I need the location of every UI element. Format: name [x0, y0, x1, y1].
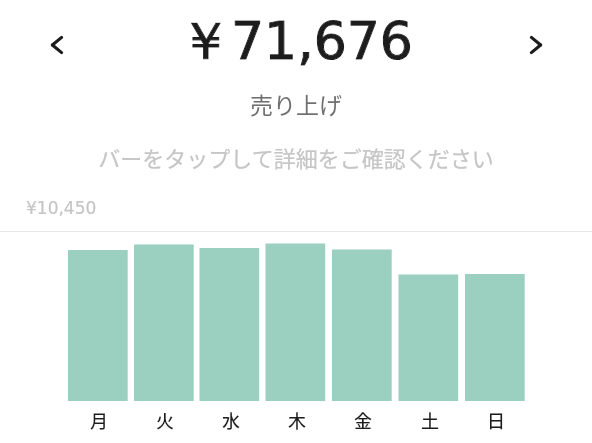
staticText: 月	[69, 407, 129, 433]
staticText: 土	[400, 407, 460, 433]
staticText: ¥10,450	[26, 198, 97, 218]
staticText: 火	[135, 407, 195, 433]
staticText: 売り上げ	[0, 87, 592, 120]
button[interactable]: 日曜日の売り上げ	[465, 274, 525, 401]
staticText: バーをタップして詳細をご確認ください	[0, 141, 592, 173]
button[interactable]: Next period	[514, 23, 558, 67]
button[interactable]: 金曜日の売り上げ	[332, 250, 392, 402]
button[interactable]: 木曜日の売り上げ	[266, 244, 326, 402]
button[interactable]: 水曜日の売り上げ	[200, 248, 260, 401]
staticText: 水	[201, 407, 261, 433]
button[interactable]: 月曜日の売り上げ	[68, 250, 128, 401]
button[interactable]: Previous period	[35, 23, 79, 67]
button[interactable]: 土曜日の売り上げ	[399, 275, 459, 402]
staticText: ￥71,676	[179, 9, 413, 75]
staticText: ￥71,676	[179, 9, 413, 75]
staticText: 日	[466, 407, 526, 433]
button[interactable]: 火曜日の売り上げ	[134, 245, 194, 402]
staticText: 金	[333, 407, 393, 433]
staticText: 木	[267, 407, 327, 433]
